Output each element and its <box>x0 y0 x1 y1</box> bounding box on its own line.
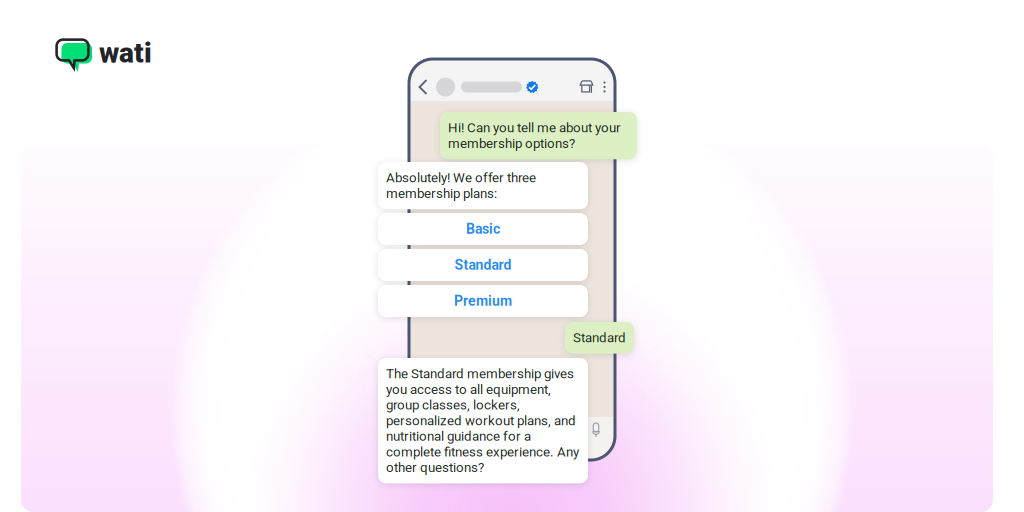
staticText: The Standard membership gives you access… <box>386 366 579 475</box>
staticText: wati <box>99 37 152 69</box>
staticText: Standard <box>573 330 626 346</box>
button[interactable]: Catalog <box>576 76 597 98</box>
button[interactable]: Back <box>412 73 434 100</box>
button[interactable]: Standard <box>378 249 588 281</box>
staticText: Absolutely! We offer three membership pl… <box>386 170 536 201</box>
staticText: Standard <box>454 257 511 273</box>
staticText: Premium <box>454 293 512 309</box>
button[interactable]: Premium <box>378 285 588 317</box>
button[interactable]: Basic <box>378 213 588 245</box>
staticText: Hi! Can you tell me about your membershi… <box>448 120 621 151</box>
staticText: Basic <box>466 221 500 237</box>
button[interactable]: More options <box>597 77 612 97</box>
